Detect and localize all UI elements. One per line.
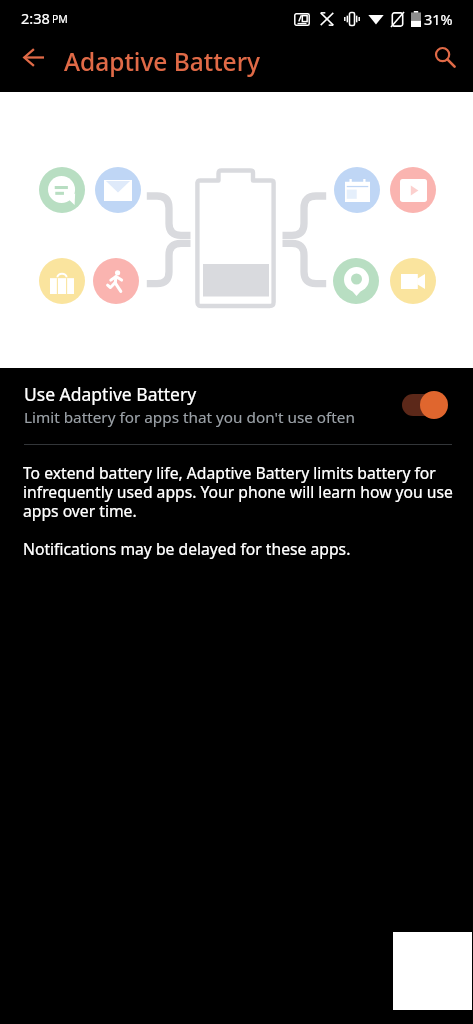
staticText: Use Adaptive Battery [24, 382, 197, 406]
staticText: Adaptive Battery [64, 45, 260, 78]
button[interactable]: Navigate up [0, 37, 64, 92]
staticText: 31% [424, 9, 453, 29]
button[interactable]: Use Adaptive Battery [0, 368, 473, 445]
staticText: Limit battery for apps that you don't us… [24, 407, 355, 428]
staticText: PM [52, 12, 68, 26]
button[interactable]: Search [423, 37, 473, 92]
staticText: Notifications may be delayed for these a… [23, 538, 351, 559]
staticText: To extend battery life, Adaptive Battery… [23, 462, 459, 522]
staticText: 2:38 [21, 8, 50, 28]
